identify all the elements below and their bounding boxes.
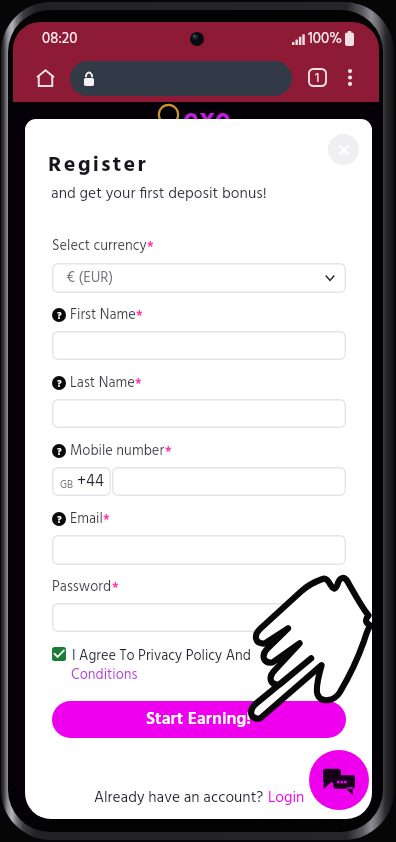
staticText: Already have an account? (94, 786, 268, 811)
staticText: ? (57, 444, 62, 458)
button[interactable] (52, 535, 346, 565)
staticText: Last Name (70, 372, 135, 395)
button[interactable]: € (EUR) (52, 263, 346, 293)
staticText: I Agree To Privacy Policy And (72, 645, 251, 668)
staticText: * (147, 236, 154, 257)
button[interactable]: Chat support (309, 750, 369, 810)
staticText: and get your first deposit bonus! (51, 182, 267, 207)
staticText: GB (60, 477, 74, 494)
staticText: * (165, 441, 172, 462)
button[interactable] (112, 467, 346, 496)
button[interactable]: Home (31, 65, 59, 91)
staticText: * (112, 577, 119, 598)
staticText: Email (70, 508, 103, 531)
button[interactable] (70, 61, 292, 96)
staticText: exe (183, 97, 231, 145)
staticText: * (103, 509, 110, 530)
button[interactable]: Tabs (306, 66, 329, 89)
staticText: First Name (70, 304, 136, 327)
staticText: Mobile number (70, 440, 165, 463)
staticText: ? (57, 512, 62, 526)
staticText: 08:20 (42, 27, 78, 51)
staticText: +44 (77, 469, 104, 495)
staticText: ? (57, 308, 62, 322)
staticText: Start Earning! (146, 706, 252, 734)
button[interactable] (52, 331, 346, 360)
button[interactable]: More options (339, 66, 361, 89)
staticText: € (EUR) (66, 266, 114, 290)
staticText: 1 (315, 68, 320, 87)
button[interactable]: Close (328, 134, 359, 165)
button[interactable]: Login (268, 786, 305, 811)
staticText: ? (57, 376, 62, 390)
staticText: * (136, 305, 143, 326)
button[interactable] (52, 399, 346, 428)
button[interactable] (52, 603, 346, 632)
staticText: * (135, 373, 142, 394)
staticText: Conditions (71, 664, 138, 687)
staticText: Select currency (52, 235, 147, 258)
staticText: 100% (308, 27, 342, 51)
staticText: Password (52, 576, 112, 599)
button[interactable]: GB (52, 467, 111, 496)
button[interactable]: I Agree To Privacy Policy And (52, 645, 346, 680)
button[interactable]: Start Earning! (52, 701, 346, 738)
staticText: Register (48, 148, 148, 183)
